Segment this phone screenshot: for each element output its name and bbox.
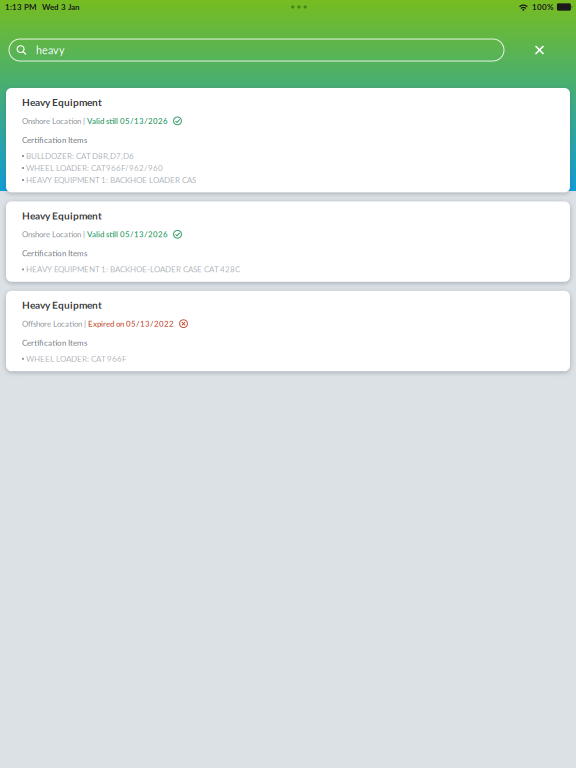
staticText: Certification Items [22,248,87,258]
staticText: Heavy Equipment [22,96,102,108]
button[interactable]: Heavy Equipment [6,291,570,371]
staticText: Offshore Location [22,319,82,328]
staticText: | [81,116,87,126]
staticText: | [81,230,87,239]
staticText: WHEEL LOADER: CAT 966F [26,354,127,363]
staticText: WHEEL LOADER: CAT966F/962/960 [26,163,163,173]
staticText: Onshore Location [22,230,81,239]
staticText: heavy [36,44,64,56]
staticText: Certification Items [22,338,87,347]
button[interactable]: Heavy Equipment [6,201,570,282]
staticText: Wed 3 Jan [42,2,80,12]
staticText: Valid still 05/13/2026 [87,116,168,126]
staticText: HEAVY EQUIPMENT 1: BACKHOE-LOADER CASE C… [26,264,240,274]
staticText: Heavy Equipment [22,299,102,311]
staticText: Valid still 05/13/2026 [87,230,168,239]
staticText: 100% [532,2,554,12]
staticText: Certification Items [22,135,87,145]
staticText: Expired on 05/13/2022 [88,319,174,328]
button[interactable]: heavy [9,39,504,61]
staticText: 1:13 PM [5,2,37,12]
staticText: HEAVY EQUIPMENT 1: BACKHOE LOADER CAS [26,175,196,185]
staticText: Heavy Equipment [22,209,102,222]
staticText: BULLDOZER: CAT D8R,D7,D6 [26,151,134,161]
staticText: | [82,319,88,328]
staticText: Onshore Location [22,116,81,126]
button[interactable]: Heavy Equipment [6,88,570,192]
button[interactable]: Clear search [524,39,555,61]
